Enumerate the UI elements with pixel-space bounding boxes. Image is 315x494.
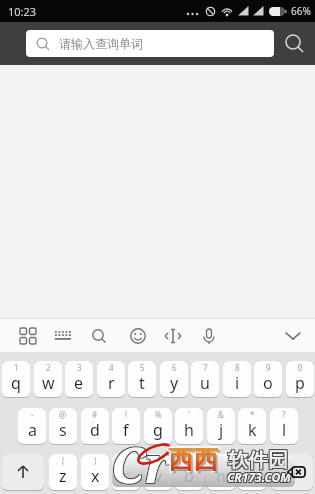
button[interactable]: 请输入查询单词 [26, 30, 274, 57]
button[interactable] [282, 325, 303, 346]
staticText: / [125, 455, 128, 466]
button[interactable]: * [238, 408, 266, 445]
staticText: ! [125, 409, 128, 420]
button[interactable]: ) [81, 454, 109, 491]
button[interactable] [162, 325, 183, 346]
staticText: CR173.COM [226, 470, 290, 486]
button[interactable]: ? [270, 408, 298, 445]
button[interactable]: / [112, 454, 140, 491]
button[interactable]: - [18, 408, 46, 445]
staticText: 软件园 [227, 447, 287, 472]
staticText: g [153, 419, 163, 441]
staticText: ) [94, 455, 97, 466]
staticText: ; [157, 455, 160, 466]
staticText: 66% [291, 4, 311, 18]
staticText: % [155, 409, 162, 420]
button[interactable]: 3 [65, 361, 93, 398]
staticText: 10:23 [8, 4, 37, 19]
staticText: 西西 [167, 444, 217, 475]
staticText: 软件园 [229, 447, 289, 472]
button[interactable]: 4 [97, 361, 125, 398]
button[interactable]: : [175, 454, 203, 491]
button[interactable] [198, 325, 219, 346]
staticText: 7 [203, 362, 208, 373]
staticText: w [42, 372, 55, 394]
staticText: CR173.COM [226, 468, 290, 484]
staticText: 软件园 [227, 449, 287, 474]
staticText: 软件园 [228, 448, 288, 473]
staticText: 请输入查询单词 [59, 36, 143, 51]
staticText: Cr [112, 431, 173, 494]
button[interactable] [52, 325, 73, 346]
button[interactable]: 7 [191, 361, 219, 398]
staticText: @ [59, 409, 67, 420]
staticText: a [28, 419, 37, 441]
button[interactable] [2, 454, 44, 491]
staticText: 6 [172, 362, 177, 373]
staticText: n [216, 465, 226, 487]
staticText: 西西 [168, 443, 218, 474]
staticText: v [154, 465, 163, 487]
staticText: 5 [140, 362, 145, 373]
button[interactable] [17, 325, 38, 346]
button[interactable]: 5 [128, 361, 156, 398]
button[interactable]: ! [207, 454, 235, 491]
staticText: 西西 [169, 443, 219, 474]
staticText: 西西 [169, 445, 219, 476]
staticText: Cr [112, 429, 173, 494]
staticText: 西西 [169, 444, 219, 475]
button[interactable]: 9 [254, 361, 282, 398]
staticText: Cr [111, 430, 172, 494]
staticText: 0 [298, 362, 303, 373]
staticText: 4 [109, 362, 114, 373]
staticText: z [59, 465, 67, 487]
staticText: 西西 [170, 446, 220, 477]
staticText: Cr [110, 431, 171, 494]
staticText: 8 [235, 362, 240, 373]
staticText: 2 [46, 362, 51, 373]
staticText: CR173.COM [228, 468, 292, 484]
staticText: 9 [266, 362, 271, 373]
button[interactable]: ; [144, 454, 172, 491]
button[interactable]: 0 [286, 361, 314, 398]
button[interactable] [271, 454, 313, 491]
button[interactable] [280, 30, 308, 58]
staticText: m [245, 465, 260, 487]
button[interactable]: 8 [223, 361, 251, 398]
staticText: ? [250, 455, 254, 466]
button[interactable]: ' [175, 408, 203, 445]
staticText: o [263, 372, 273, 394]
staticText: ( [62, 455, 65, 466]
staticText: j [219, 419, 224, 441]
staticText: Cr [110, 429, 171, 494]
button[interactable]: % [144, 408, 172, 445]
button[interactable]: ! [112, 408, 140, 445]
button[interactable] [88, 325, 109, 346]
button[interactable]: & [207, 408, 235, 445]
staticText: ! [220, 455, 223, 466]
staticText: u [200, 372, 210, 394]
staticText: - [31, 409, 34, 420]
staticText: k [248, 419, 257, 441]
staticText: x [91, 465, 100, 487]
staticText: & [218, 409, 224, 420]
button[interactable]: 1 [2, 361, 30, 398]
staticText: 西西 [167, 445, 217, 476]
staticText: i [235, 372, 240, 394]
staticText: l [282, 419, 287, 441]
button[interactable]: ( [49, 454, 77, 491]
button[interactable]: 2 [34, 361, 62, 398]
staticText: # [92, 409, 98, 420]
button[interactable]: 6 [160, 361, 188, 398]
staticText: t [139, 372, 145, 394]
staticText: s [59, 419, 67, 441]
staticText: p [295, 372, 305, 394]
button[interactable]: @ [49, 408, 77, 445]
staticText: b [184, 465, 194, 487]
button[interactable]: ? [238, 454, 266, 491]
button[interactable] [127, 325, 148, 346]
staticText: y [170, 372, 179, 394]
staticText: ? [282, 409, 286, 420]
staticText: d [90, 419, 100, 441]
button[interactable]: # [81, 408, 109, 445]
